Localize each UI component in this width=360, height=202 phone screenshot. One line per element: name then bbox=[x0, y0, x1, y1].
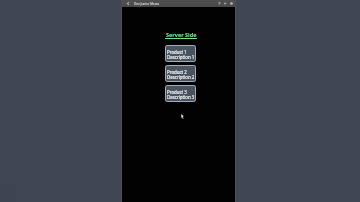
button[interactable]: More options bbox=[229, 0, 234, 7]
button[interactable]: Product 3 Description 3 bbox=[165, 85, 196, 102]
staticText: Dev Junior Mswa bbox=[134, 2, 159, 6]
button[interactable]: Bookmark bbox=[217, 0, 222, 7]
button[interactable]: Product 1 Description 1 bbox=[165, 45, 196, 62]
staticText: Product 2 Description 2 bbox=[167, 69, 195, 81]
button[interactable]: Product 2 Description 2 bbox=[165, 65, 196, 82]
button[interactable]: Back bbox=[125, 0, 130, 7]
button[interactable]: Run bbox=[223, 0, 228, 7]
staticText: Product 1 Description 1 bbox=[167, 49, 195, 61]
staticText: Product 3 Description 3 bbox=[167, 89, 195, 101]
staticText: Server Side bbox=[166, 31, 197, 38]
